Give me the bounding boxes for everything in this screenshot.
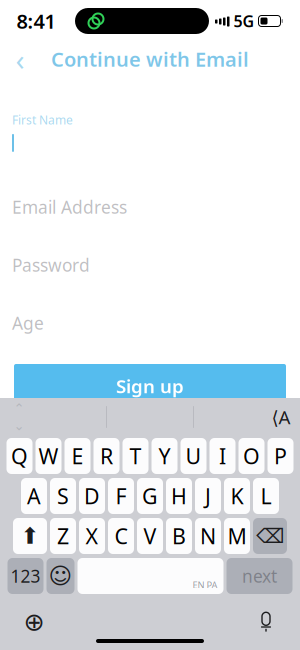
button[interactable]: N xyxy=(195,518,221,554)
staticText: G xyxy=(142,482,158,510)
button[interactable]: H xyxy=(166,478,192,514)
button[interactable]: W xyxy=(35,438,61,474)
staticText: S xyxy=(57,482,69,510)
button[interactable]: Password xyxy=(0,236,300,294)
staticText: F xyxy=(115,482,126,510)
button[interactable]: E xyxy=(64,438,90,474)
button[interactable]: V xyxy=(137,518,163,554)
button[interactable]: L xyxy=(253,478,279,514)
button[interactable]: Text formatting xyxy=(264,399,298,435)
button[interactable]: Sign up xyxy=(14,364,286,408)
staticText: O xyxy=(243,442,260,470)
staticText: H xyxy=(171,482,187,510)
staticText: Z xyxy=(57,522,69,550)
staticText: First Name xyxy=(12,112,73,128)
staticText: ⟨A xyxy=(271,405,290,429)
button[interactable]: Next xyxy=(226,558,292,594)
staticText: C xyxy=(114,522,127,550)
button[interactable]: Delete xyxy=(253,518,287,554)
staticText: P xyxy=(274,442,287,470)
button[interactable]: Q xyxy=(6,438,32,474)
button[interactable]: C xyxy=(108,518,134,554)
button[interactable]: Back xyxy=(0,42,40,76)
button[interactable]: R xyxy=(93,438,119,474)
staticText: ☺ xyxy=(48,563,72,589)
staticText: N xyxy=(200,522,216,550)
staticText: EN PA xyxy=(192,579,217,591)
staticText: 8:41 xyxy=(16,8,55,34)
button[interactable]: Dictation xyxy=(246,605,286,639)
staticText: E xyxy=(71,442,83,470)
button[interactable]: A xyxy=(21,478,47,514)
staticText: U xyxy=(185,442,201,470)
button[interactable]: Y xyxy=(151,438,177,474)
button[interactable]: Change keyboard language xyxy=(14,605,54,639)
button[interactable]: First Name xyxy=(0,112,300,162)
button[interactable]: Z xyxy=(50,518,76,554)
staticText: M xyxy=(227,522,246,550)
staticText: A xyxy=(27,482,41,510)
staticText: K xyxy=(230,482,243,510)
button[interactable]: P xyxy=(267,438,293,474)
button[interactable]: O xyxy=(238,438,264,474)
staticText: ⊕ xyxy=(23,608,44,636)
button[interactable]: Shift xyxy=(13,518,47,554)
button[interactable]: F xyxy=(108,478,134,514)
staticText: Email Address xyxy=(12,195,127,218)
staticText: X xyxy=(85,522,98,550)
staticText: V xyxy=(143,522,156,550)
staticText: next xyxy=(242,564,277,587)
staticText: L xyxy=(260,482,271,510)
staticText: ‹ xyxy=(15,39,24,78)
button[interactable]: I xyxy=(209,438,235,474)
staticText: T xyxy=(129,442,141,470)
button[interactable]: Age xyxy=(0,294,300,352)
staticText: Password xyxy=(12,253,90,276)
button[interactable]: M xyxy=(224,518,250,554)
staticText: Y xyxy=(158,442,170,470)
staticText: ⌄ xyxy=(13,418,24,433)
staticText: W xyxy=(38,442,58,470)
button[interactable]: U xyxy=(180,438,206,474)
button[interactable]: Emoji xyxy=(46,558,74,594)
staticText: ⬆ xyxy=(20,523,39,549)
staticText: ⌃ xyxy=(13,401,24,416)
staticText: B xyxy=(172,522,186,550)
staticText: I xyxy=(219,442,226,470)
button[interactable]: Email Address xyxy=(0,178,300,236)
staticText: R xyxy=(100,442,113,470)
staticText: 123 xyxy=(10,564,40,587)
button[interactable]: B xyxy=(166,518,192,554)
button[interactable]: X xyxy=(79,518,105,554)
staticText: Sign up xyxy=(116,374,184,398)
button[interactable]: G xyxy=(137,478,163,514)
button[interactable]: Numbers xyxy=(7,558,43,594)
button[interactable]: T xyxy=(122,438,148,474)
button[interactable]: S xyxy=(50,478,76,514)
button[interactable]: K xyxy=(224,478,250,514)
staticText: D xyxy=(84,482,100,510)
staticText: 5G xyxy=(233,10,254,32)
staticText: Q xyxy=(11,442,28,470)
staticText: Age xyxy=(12,311,44,334)
staticText: Continue with Email xyxy=(51,46,249,72)
staticText: J xyxy=(205,482,211,510)
button[interactable]: D xyxy=(79,478,105,514)
button[interactable]: J xyxy=(195,478,221,514)
staticText: ⌫ xyxy=(256,525,284,547)
button[interactable]: Space xyxy=(77,558,223,594)
